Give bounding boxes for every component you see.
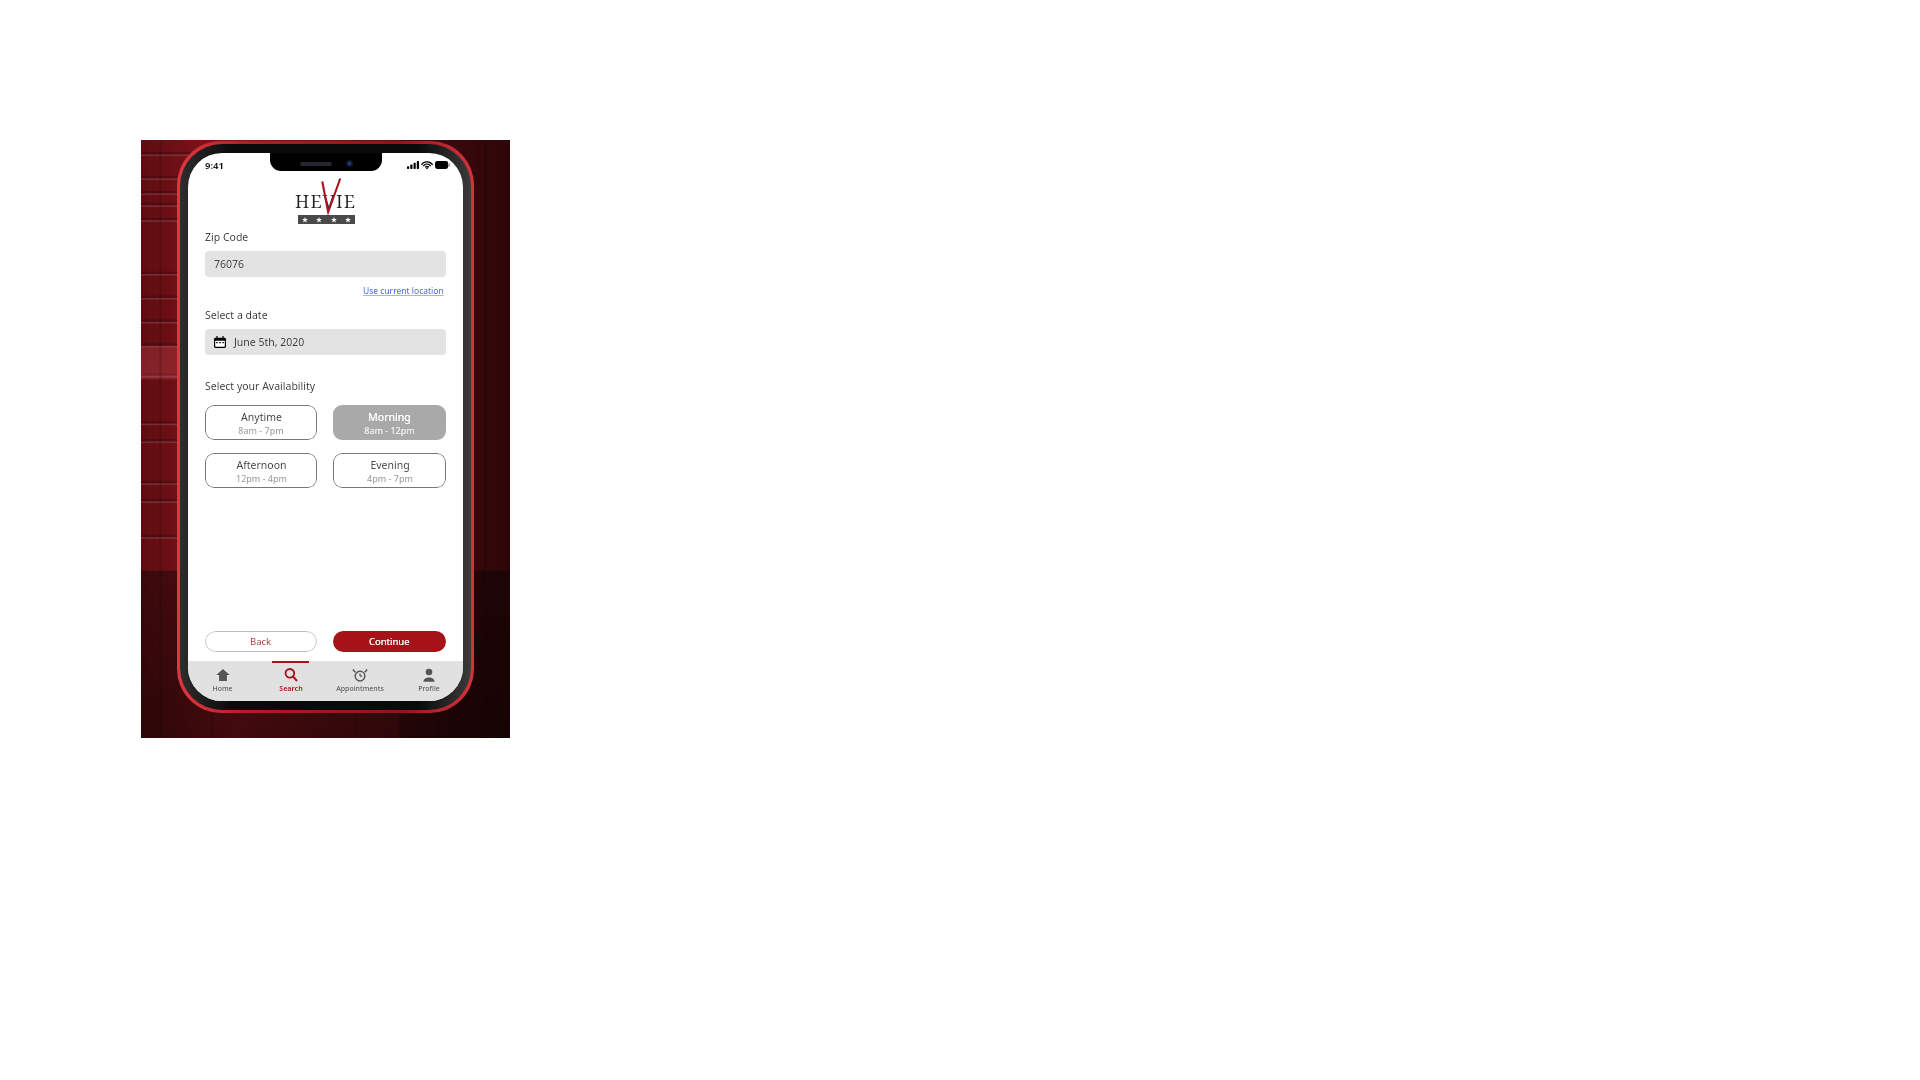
button[interactable]: Home [188, 661, 256, 701]
button[interactable]: Use current location [361, 283, 446, 299]
staticText: Back [250, 635, 272, 648]
staticText: Select your Availability [205, 379, 316, 393]
button[interactable]: Appointments [325, 661, 394, 701]
staticText: Continue [369, 635, 410, 648]
staticText: Evening [370, 458, 410, 472]
staticText: 12pm - 4pm [236, 472, 287, 484]
button[interactable]: Search [256, 661, 325, 701]
staticText: 9:41 [205, 159, 224, 172]
button[interactable]: Profile [394, 661, 463, 701]
button[interactable]: Afternoon [205, 453, 317, 488]
staticText: Anytime [241, 410, 282, 424]
button[interactable]: 76076 [205, 251, 446, 277]
staticText: Afternoon [236, 458, 287, 472]
button[interactable]: Continue [333, 631, 446, 652]
staticText: Select a date [205, 308, 268, 322]
staticText: Use current location [363, 285, 444, 297]
staticText: Profile [418, 684, 440, 694]
button[interactable]: Back [205, 631, 317, 652]
staticText: Zip Code [205, 230, 249, 244]
staticText: HEVIE [295, 189, 357, 214]
staticText: Morning [368, 410, 411, 424]
staticText: June 5th, 2020 [234, 335, 305, 349]
staticText: Search [279, 684, 303, 694]
button[interactable]: Morning [333, 405, 446, 440]
staticText: 4pm - 7pm [367, 472, 413, 484]
button[interactable]: Anytime [205, 405, 317, 440]
staticText: 8am - 12pm [364, 424, 415, 436]
staticText: Home [212, 684, 233, 694]
staticText: 76076 [214, 257, 245, 271]
staticText: Appointments [336, 684, 384, 694]
button[interactable]: Evening [333, 453, 446, 488]
button[interactable]: June 5th, 2020 [205, 329, 446, 355]
staticText: 8am - 7pm [238, 424, 284, 436]
